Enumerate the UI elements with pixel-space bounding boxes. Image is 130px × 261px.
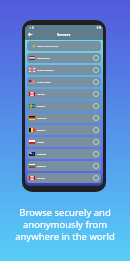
button[interactable]: Select Fastest Server [27, 41, 101, 51]
staticText: Sweden [37, 105, 46, 108]
button[interactable]: Australia [27, 149, 101, 159]
staticText: Belgium [37, 129, 46, 132]
staticText: Netherlands [37, 57, 50, 60]
button[interactable]: United Kingdom [27, 65, 101, 75]
button[interactable]: Germany [27, 113, 101, 123]
button[interactable]: Canada [27, 173, 101, 183]
button[interactable]: Belgium [27, 125, 101, 135]
staticText: Canada [37, 93, 45, 96]
staticText: Select Fastest Server [37, 45, 59, 48]
staticText: United Kingdom [37, 69, 54, 72]
staticText: Bulgaria [37, 165, 46, 168]
staticText: Germany [37, 117, 47, 120]
button[interactable]: Poland [27, 137, 101, 147]
staticText: Servers [57, 32, 71, 37]
button[interactable]: Bulgaria [27, 161, 101, 171]
staticText: Canada [37, 177, 45, 180]
button[interactable]: Netherlands [27, 53, 101, 63]
button[interactable]: Canada [27, 89, 101, 99]
staticText: Australia [37, 153, 47, 156]
button[interactable]: United States [27, 77, 101, 87]
staticText: Browse securely and anonymously from any… [0, 206, 130, 243]
staticText: Poland [37, 141, 45, 144]
staticText: United States [37, 81, 51, 84]
button[interactable]: Back [27, 31, 34, 38]
button[interactable]: Sweden [27, 101, 101, 111]
